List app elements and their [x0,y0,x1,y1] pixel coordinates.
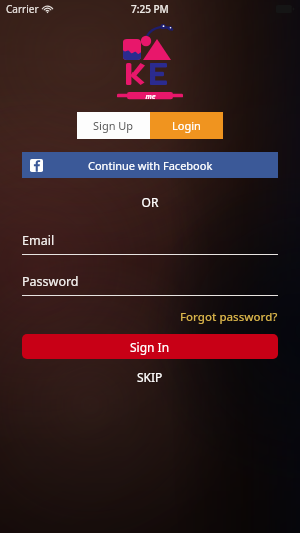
staticText: Sign Up [93,118,134,133]
button[interactable]: Continue with Facebook [22,152,278,178]
button[interactable]: Forgot password? [0,309,278,325]
staticText: OR [0,194,300,210]
button[interactable]: Email [22,232,278,255]
staticText: Continue with Facebook [88,158,213,173]
button[interactable]: SKIP [0,369,300,385]
staticText: Sign In [130,339,170,355]
staticText: me [145,92,156,102]
button[interactable]: Login [150,112,223,139]
button[interactable]: Password [22,273,278,296]
staticText: Email [22,232,55,249]
staticText: 7:25 PM [131,2,169,16]
staticText: Password [22,273,79,290]
staticText: Carrier [6,2,39,16]
staticText: Forgot password? [180,309,278,325]
staticText: Login [172,118,201,133]
button[interactable]: Sign In [22,334,278,359]
button[interactable]: Sign Up [77,112,150,139]
staticText: SKIP [137,369,163,385]
